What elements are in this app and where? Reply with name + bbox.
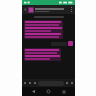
- button[interactable]: Sticker: [68, 41, 73, 46]
- button[interactable]: [24, 20, 63, 39]
- button[interactable]: Emoji: [23, 81, 27, 85]
- button[interactable]: Attach: [28, 81, 32, 85]
- button[interactable]: [35, 8, 69, 12]
- button[interactable]: Back: [23, 7, 28, 12]
- button[interactable]: [24, 48, 61, 61]
- button[interactable]: Camera: [65, 81, 69, 85]
- button[interactable]: More options: [69, 7, 74, 12]
- button[interactable]: Add: [33, 81, 37, 85]
- button[interactable]: Back: [30, 88, 37, 95]
- button[interactable]: Home: [45, 88, 52, 95]
- button[interactable]: Recent apps: [60, 88, 67, 95]
- button[interactable]: Contact avatar: [28, 7, 34, 13]
- button[interactable]: Voice message: [70, 81, 74, 85]
